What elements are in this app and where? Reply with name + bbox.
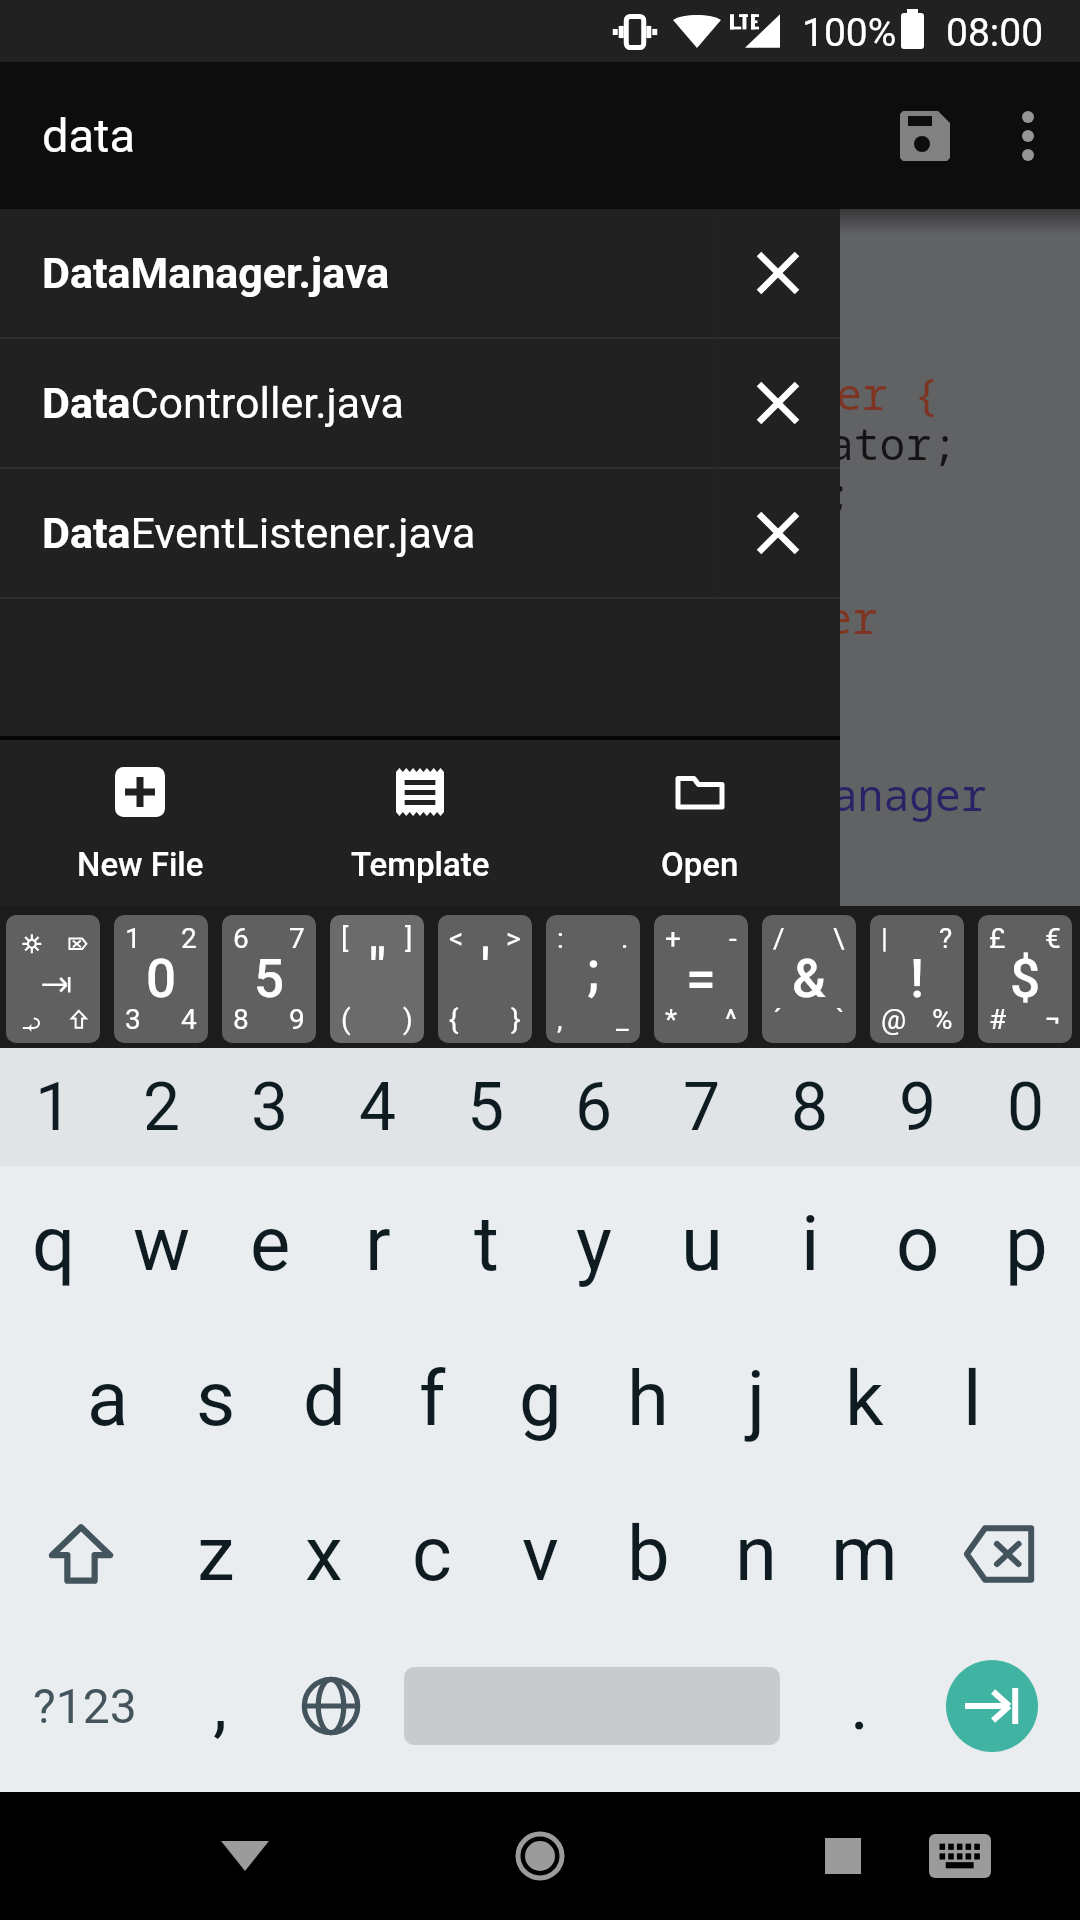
button[interactable]: Remove from list (715, 339, 840, 467)
button[interactable]: m (810, 1476, 918, 1631)
button[interactable]: 1 (0, 1048, 108, 1166)
staticText: n (735, 1509, 777, 1598)
button[interactable]: Home (495, 1811, 585, 1901)
button[interactable]: : (546, 915, 640, 1043)
button[interactable]: Save (875, 62, 975, 209)
staticText: 0 (146, 948, 177, 1010)
staticText: % (932, 1003, 953, 1036)
staticText: g (519, 1354, 562, 1443)
staticText: h (627, 1354, 669, 1443)
staticText: @ (881, 1003, 907, 1036)
button[interactable]: g (486, 1321, 594, 1476)
button[interactable]: 0 (972, 1048, 1080, 1166)
button[interactable]: k (810, 1321, 918, 1476)
button[interactable]: DataManager.java (0, 209, 840, 337)
button[interactable]: y (540, 1166, 648, 1321)
staticText: data (42, 108, 136, 163)
button[interactable]: £ (978, 915, 1072, 1043)
button[interactable]: 3 (216, 1048, 324, 1166)
button[interactable]: New File (0, 740, 280, 906)
button[interactable]: 6 (540, 1048, 648, 1166)
button[interactable]: Change language (270, 1631, 392, 1781)
button[interactable]: Template (280, 740, 560, 906)
button[interactable]: ?123 (0, 1631, 170, 1781)
button[interactable]: Enter (904, 1631, 1080, 1781)
button[interactable]: f (378, 1321, 486, 1476)
staticText: 7 (683, 1069, 721, 1146)
button[interactable]: q (0, 1166, 108, 1321)
button[interactable]: Recent apps (798, 1811, 888, 1901)
button[interactable]: o (864, 1166, 972, 1321)
button[interactable]: Space (392, 1631, 792, 1781)
staticText: 9 (289, 1003, 305, 1036)
button[interactable]: DataController.java (0, 339, 840, 467)
staticText: & (792, 948, 826, 1010)
button[interactable]: [ (330, 915, 424, 1043)
button[interactable]: Back (200, 1811, 290, 1901)
button[interactable]: u (648, 1166, 756, 1321)
button[interactable]: t (432, 1166, 540, 1321)
button[interactable]: 7 (648, 1048, 756, 1166)
button[interactable]: . (792, 1631, 904, 1781)
staticText: 8 (233, 1003, 249, 1036)
button[interactable]: i (756, 1166, 864, 1321)
button[interactable]: d (270, 1321, 378, 1476)
staticText: < (449, 922, 464, 955)
staticText: 1 (125, 922, 141, 955)
button[interactable]: , (170, 1631, 270, 1781)
button[interactable]: c (378, 1476, 486, 1631)
button[interactable]: Backspace (918, 1476, 1080, 1631)
button[interactable]: 5 (432, 1048, 540, 1166)
button[interactable]: Keyboard options (6, 915, 100, 1043)
button[interactable]: s (162, 1321, 270, 1476)
button[interactable]: a (54, 1321, 162, 1476)
staticText: a (87, 1354, 129, 1443)
button[interactable]: v (486, 1476, 594, 1631)
button[interactable]: + (654, 915, 748, 1043)
button[interactable]: 1 (114, 915, 208, 1043)
staticText: c (412, 1509, 452, 1598)
button[interactable]: 9 (864, 1048, 972, 1166)
staticText: , (213, 1662, 228, 1746)
button[interactable]: h (594, 1321, 702, 1476)
staticText: 3 (251, 1069, 289, 1146)
button[interactable]: z (162, 1476, 270, 1631)
staticText: # (989, 1003, 1007, 1036)
button[interactable]: j (702, 1321, 810, 1476)
staticText: ´ (773, 1003, 782, 1036)
staticText: { (449, 1003, 459, 1036)
staticText: y (576, 1199, 612, 1288)
button[interactable]: 8 (756, 1048, 864, 1166)
staticText: , (557, 1003, 563, 1036)
button[interactable]: Remove from list (715, 209, 840, 337)
button[interactable]: 6 (222, 915, 316, 1043)
button[interactable]: Shift (0, 1476, 162, 1631)
staticText: f (419, 1354, 446, 1443)
button[interactable]: < (438, 915, 532, 1043)
button[interactable]: e (216, 1166, 324, 1321)
staticText: 08:00 (946, 10, 1044, 56)
button[interactable]: w (108, 1166, 216, 1321)
button[interactable]: 2 (108, 1048, 216, 1166)
button[interactable]: n (702, 1476, 810, 1631)
button[interactable]: Show keyboard (915, 1811, 1005, 1901)
button[interactable]: l (918, 1321, 1026, 1476)
staticText: . (850, 1662, 869, 1746)
staticText: ¬ (1045, 1003, 1061, 1036)
button[interactable]: Open (560, 740, 840, 906)
staticText: ^ (725, 1003, 737, 1036)
staticText: i (801, 1199, 820, 1288)
button[interactable]: 4 (324, 1048, 432, 1166)
button[interactable]: / (762, 915, 856, 1043)
staticText: ' (481, 938, 490, 1000)
button[interactable]: More options (975, 62, 1080, 209)
staticText: j (747, 1354, 766, 1443)
staticText: er (826, 588, 878, 647)
button[interactable]: b (594, 1476, 702, 1631)
button[interactable]: p (972, 1166, 1080, 1321)
button[interactable]: DataEventListener.java (0, 469, 840, 597)
button[interactable]: Remove from list (715, 469, 840, 597)
button[interactable]: r (324, 1166, 432, 1321)
button[interactable]: x (270, 1476, 378, 1631)
button[interactable]: | (870, 915, 964, 1043)
